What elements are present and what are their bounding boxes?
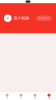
staticText: 用户昵称 — [13, 16, 29, 21]
staticText: 分类 — [20, 97, 22, 99]
button[interactable]: 购物车 — [28, 92, 42, 100]
button[interactable]: 分类 — [14, 92, 28, 100]
button[interactable]: 首页 — [0, 92, 14, 100]
button[interactable]: 会员中心 — [36, 16, 52, 21]
staticText: 会员中心 — [38, 17, 50, 20]
staticText: 我的 — [48, 97, 50, 99]
button[interactable]: 我的 — [42, 92, 56, 100]
